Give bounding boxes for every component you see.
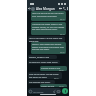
staticText: 09:33 [59,85,64,87]
staticText: Great. I also added the export option an… [32,43,65,50]
button[interactable]: Message [28,88,61,94]
staticText: Yes! I'll be there. Let me check the bui… [29,37,64,42]
staticText: 09:20 [60,51,65,53]
button[interactable]: Works for me [40,84,67,88]
staticText: I've booked the room. [29,81,51,84]
staticText: Works for me [41,85,55,88]
button[interactable]: More options [66,6,69,11]
staticText: Hey! Are we still on for the team sync t… [32,12,65,17]
button[interactable]: Sounds good to me [40,66,67,71]
staticText: 09:12 [60,18,65,20]
staticText: 09:13 [60,33,65,35]
staticText: Message [33,90,44,93]
staticText: Perfect, thanks a lot! [29,56,50,59]
staticText: Sounds good to me [41,67,61,70]
staticText: I pushed the latest build to the staging… [32,23,65,30]
button[interactable]: Back [27,6,31,11]
button[interactable]: Yes! I'll be there. Let me check the bui… [28,36,65,42]
staticText: 09:31 [54,77,59,79]
button[interactable]: One more thing: can we move the demo to … [28,72,62,79]
staticText: One more thing: can we move the demo to … [29,73,61,78]
staticText: Alex Morgan [36,7,55,11]
button[interactable]: I'll send my notes after lunch. [28,60,60,64]
button[interactable]: I pushed the latest build to the staging… [31,22,66,35]
staticText: I'll send my notes after lunch. [29,61,58,64]
button[interactable]: Voice message [62,88,68,94]
staticText: 09:26 [59,69,64,71]
button[interactable]: Perfect, thanks a lot! [28,55,57,59]
button[interactable]: Video call [58,6,62,11]
button[interactable]: I've booked the room. [28,80,55,84]
button[interactable]: Hey! Are we still on for the team sync t… [31,11,66,21]
button[interactable]: Voice call [62,6,66,11]
button[interactable]: Great. I also added the export option an… [31,42,66,54]
